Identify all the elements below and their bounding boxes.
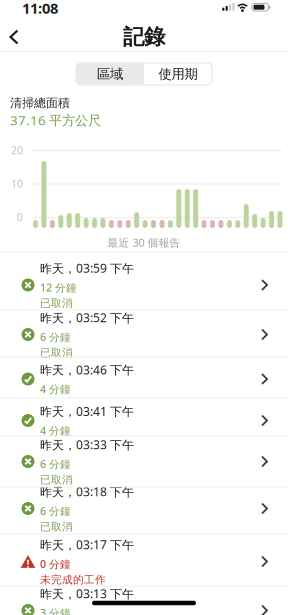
- staticText: 3 分鐘: [40, 606, 71, 615]
- staticText: 昨天，03:17 下午: [40, 537, 134, 553]
- staticText: 6 分鐘: [40, 504, 71, 518]
- staticText: 11:08: [22, 0, 58, 18]
- staticText: 記錄: [123, 24, 165, 50]
- staticText: 清掃總面積: [10, 96, 70, 110]
- staticText: 已取消: [40, 297, 73, 310]
- staticText: 區域: [97, 66, 123, 82]
- staticText: 6 分鐘: [40, 330, 71, 344]
- staticText: 0 分鐘: [40, 557, 71, 571]
- button[interactable]: 昨天，03:52 下午: [0, 310, 288, 358]
- staticText: 昨天，03:52 下午: [40, 310, 134, 326]
- staticText: 未完成的工作: [40, 573, 106, 586]
- button[interactable]: 昨天，03:13 下午: [0, 582, 288, 615]
- staticText: 0: [16, 210, 22, 224]
- staticText: 6 分鐘: [40, 457, 71, 471]
- button[interactable]: 昨天，03:41 下午: [0, 399, 288, 441]
- staticText: 已取消: [40, 473, 73, 486]
- button[interactable]: 區域: [76, 63, 144, 85]
- button[interactable]: 昨天，03:59 下午: [0, 259, 288, 311]
- staticText: 昨天，03:13 下午: [40, 586, 134, 602]
- button[interactable]: 使用期: [144, 63, 212, 85]
- button[interactable]: Back: [0, 23, 28, 51]
- staticText: 4 分鐘: [40, 423, 71, 438]
- button[interactable]: 昨天，03:33 下午: [0, 437, 288, 485]
- staticText: 昨天，03:33 下午: [40, 437, 134, 453]
- staticText: 4 分鐘: [40, 382, 71, 396]
- staticText: 已取消: [40, 520, 73, 533]
- staticText: 昨天，03:59 下午: [40, 260, 134, 276]
- staticText: 昨天，03:41 下午: [40, 403, 134, 419]
- staticText: 最近 30 個報告: [107, 235, 180, 250]
- staticText: !: [26, 557, 29, 571]
- staticText: 20: [11, 143, 23, 157]
- staticText: 12 分鐘: [40, 280, 77, 294]
- button[interactable]: 昨天，03:18 下午: [0, 484, 288, 532]
- button[interactable]: 昨天，03:46 下午: [0, 358, 288, 400]
- staticText: 37.16 平方公尺: [10, 111, 101, 129]
- staticText: 10: [11, 176, 23, 191]
- button[interactable]: !: [0, 533, 288, 589]
- staticText: 已取消: [40, 346, 73, 359]
- staticText: 使用期: [158, 66, 197, 82]
- staticText: 昨天，03:46 下午: [40, 362, 134, 378]
- staticText: 昨天，03:18 下午: [40, 484, 134, 500]
